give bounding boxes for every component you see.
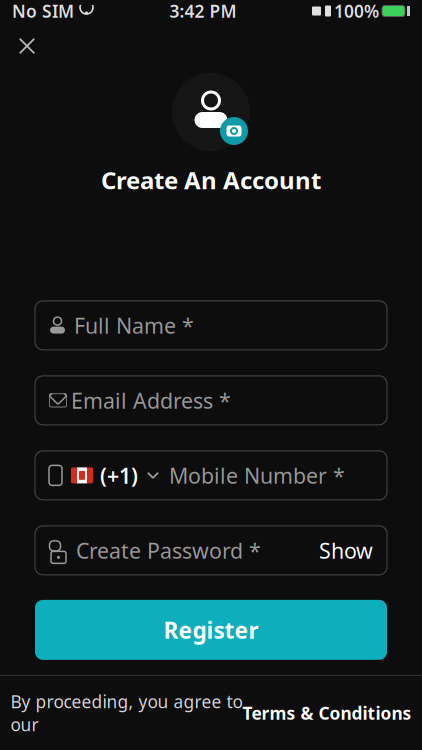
staticText: Create An Account (101, 164, 321, 196)
staticText: 3:42 PM (169, 0, 236, 22)
staticText: Terms & Conditions (242, 701, 411, 724)
staticText: Show (319, 536, 373, 564)
button[interactable]: Close (5, 24, 49, 68)
staticText: Register (163, 615, 258, 645)
button[interactable]: Create Password * (35, 526, 387, 575)
button[interactable]: Full Name * (35, 301, 387, 350)
button[interactable]: (+1) (35, 451, 387, 500)
staticText: No SIM (12, 0, 74, 22)
staticText: Mobile Number * (169, 461, 345, 489)
staticText: Email Address * (71, 386, 231, 414)
staticText: Create Password * (76, 536, 261, 564)
button[interactable]: Add profile photo (169, 72, 253, 152)
button[interactable]: Email Address * (35, 376, 387, 425)
button[interactable]: By proceeding, you agree to our (0, 676, 422, 750)
staticText: By proceeding, you agree to our (10, 690, 242, 736)
staticText: 100% (334, 0, 379, 22)
button[interactable]: Register (35, 600, 387, 660)
staticText: (+1) (100, 461, 138, 489)
staticText: Full Name * (74, 311, 194, 339)
